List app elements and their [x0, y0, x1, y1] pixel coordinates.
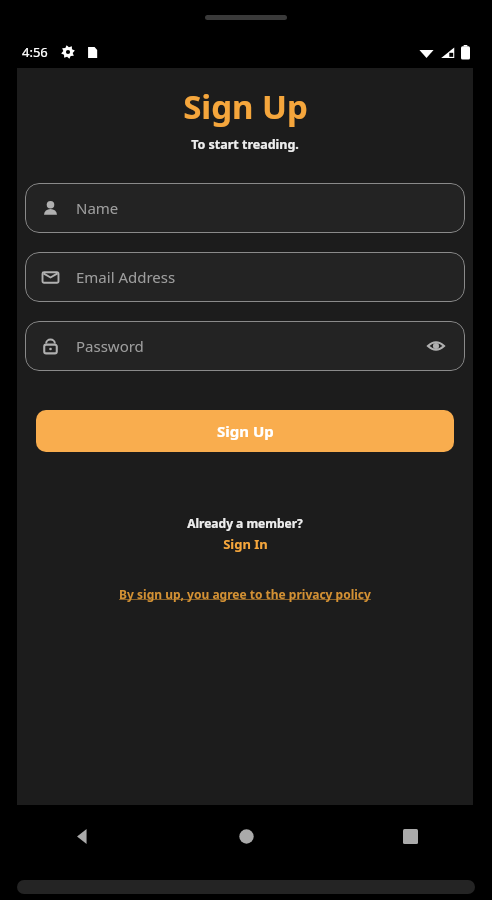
staticText: Sign Up: [217, 421, 274, 441]
staticText: Password: [76, 336, 144, 356]
button[interactable]: Back: [0, 805, 164, 867]
staticText: Already a member?: [187, 515, 303, 531]
button[interactable]: By sign up, you agree to the privacy pol…: [119, 586, 371, 602]
button[interactable]: Home: [164, 805, 328, 867]
staticText: 4:56: [22, 43, 48, 61]
button[interactable]: Sign Up: [36, 410, 454, 452]
button[interactable]: Recent apps: [328, 805, 492, 867]
button[interactable]: Name: [25, 183, 465, 233]
staticText: Name: [76, 198, 119, 218]
button[interactable]: Password: [25, 321, 465, 371]
staticText: Sign In: [223, 535, 268, 553]
button[interactable]: Email Address: [25, 252, 465, 302]
button[interactable]: Show password: [423, 333, 449, 359]
staticText: To start treading.: [191, 136, 299, 153]
button[interactable]: Sign In: [223, 535, 268, 553]
staticText: By sign up, you agree to the privacy pol…: [119, 586, 371, 602]
staticText: Email Address: [76, 267, 176, 287]
staticText: Sign Up: [183, 84, 308, 129]
